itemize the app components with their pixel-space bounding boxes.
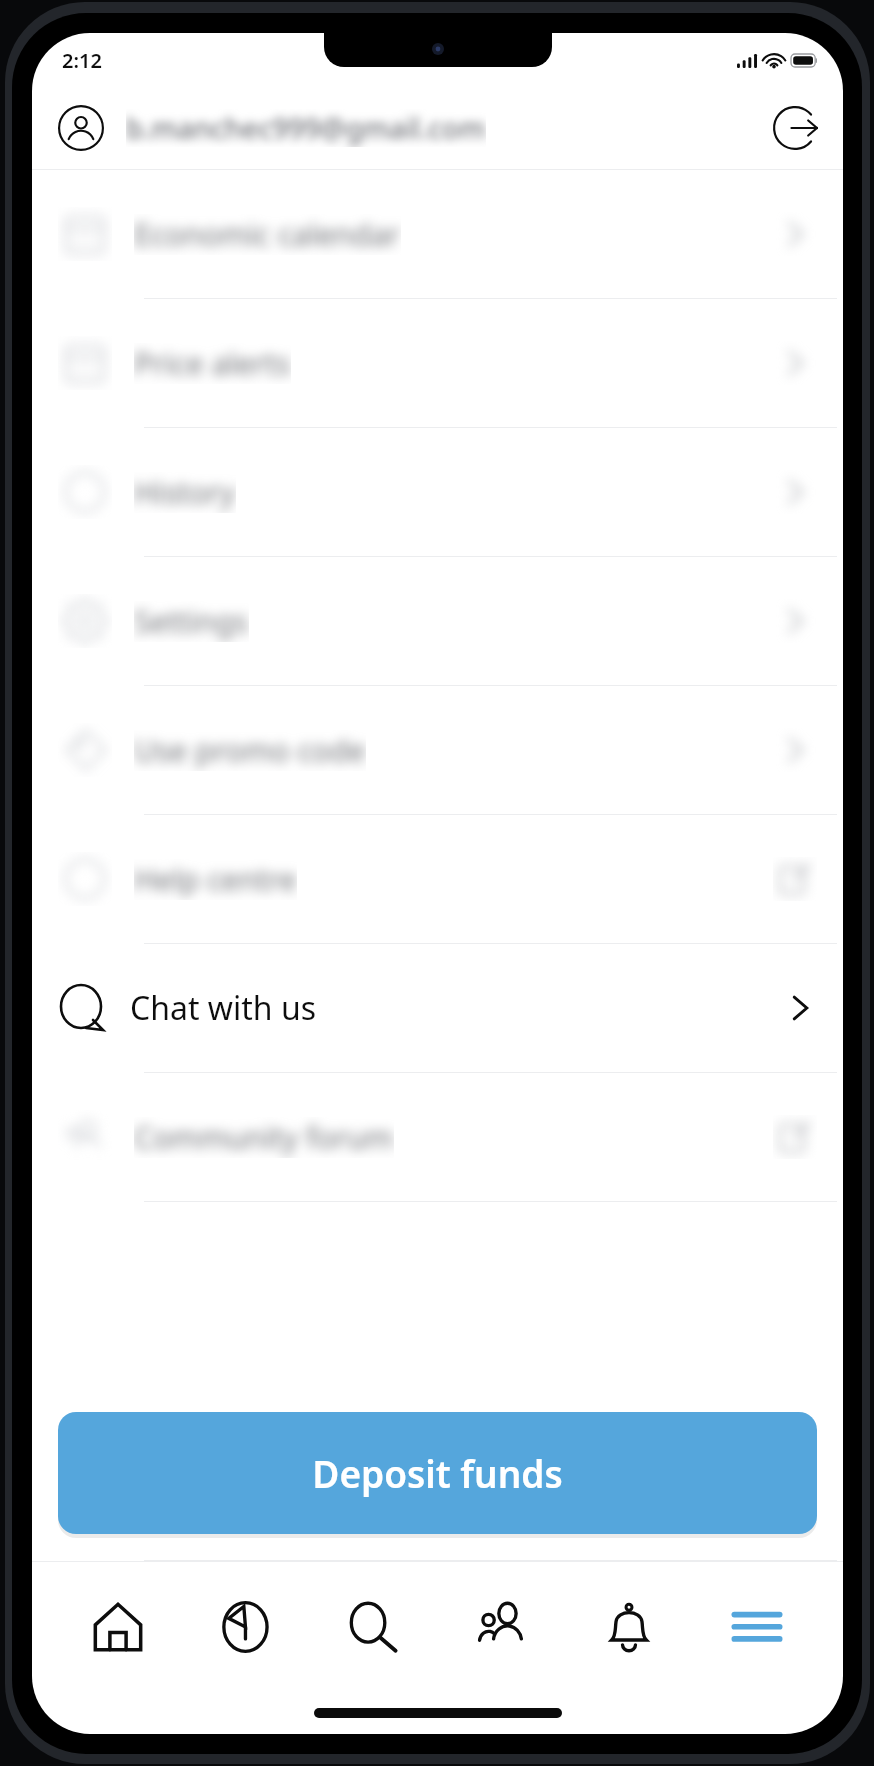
button[interactable]: Community forum <box>32 1073 843 1202</box>
staticText: History <box>134 472 236 513</box>
button[interactable]: Chat with us <box>32 944 843 1073</box>
button[interactable]: Portfolio <box>190 1572 302 1682</box>
staticText: Help centre <box>134 859 297 900</box>
button[interactable]: Log out <box>773 106 817 150</box>
button[interactable]: Search <box>318 1572 430 1682</box>
button[interactable]: Home <box>62 1572 174 1682</box>
button[interactable]: Use promo code <box>32 686 843 815</box>
button[interactable]: Account <box>32 87 843 169</box>
button[interactable]: Menu <box>701 1572 813 1682</box>
staticText: Deposit funds <box>312 1448 563 1498</box>
button[interactable]: Notifications <box>573 1572 685 1682</box>
other: Account <box>58 105 104 151</box>
button[interactable]: Settings <box>32 557 843 686</box>
staticText: 2:12 <box>62 47 102 74</box>
button[interactable]: Economic calendar <box>32 170 843 299</box>
button[interactable]: Deposit funds <box>58 1412 817 1534</box>
button[interactable]: Social <box>445 1572 557 1682</box>
staticText: Settings <box>134 601 249 642</box>
staticText: b.manchec999@gmail.com <box>126 109 486 147</box>
button[interactable]: History <box>32 428 843 557</box>
button[interactable]: Help centre <box>32 815 843 944</box>
staticText: Price alerts <box>134 343 291 384</box>
staticText: Community forum <box>134 1117 394 1158</box>
staticText: Chat with us <box>130 986 316 1030</box>
staticText: Economic calendar <box>134 214 401 255</box>
staticText: Use promo code <box>134 730 366 771</box>
button[interactable]: Price alerts <box>32 299 843 428</box>
